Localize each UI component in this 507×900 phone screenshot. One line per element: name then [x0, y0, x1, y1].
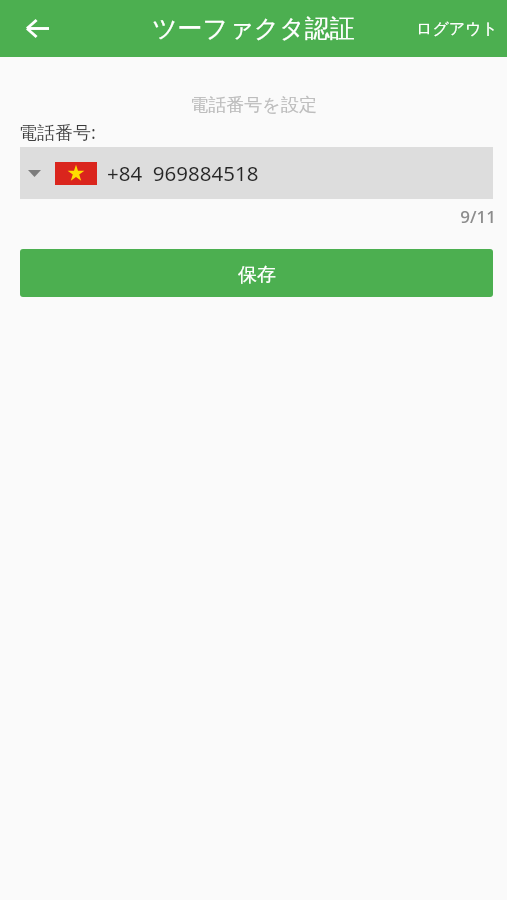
staticText: 保存: [238, 263, 276, 287]
button[interactable]: 保存: [20, 249, 493, 297]
staticText: ログアウト: [416, 19, 498, 39]
staticText: ツーファクタ認証: [152, 13, 355, 44]
staticText: 電話番号を設定: [0, 94, 507, 117]
staticText: +84 969884518: [107, 159, 259, 187]
button[interactable]: Back: [13, 5, 61, 53]
staticText: 電話番号:: [19, 120, 96, 145]
button[interactable]: Select country code: [20, 147, 107, 199]
staticText: 9/11: [0, 205, 496, 228]
button[interactable]: ログアウト: [403, 9, 507, 49]
button[interactable]: Select country code: [20, 147, 493, 199]
